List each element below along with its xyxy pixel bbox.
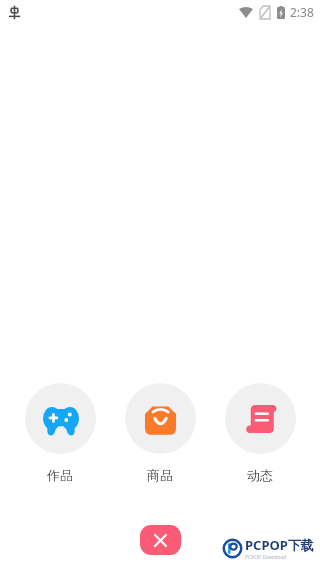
button[interactable]: 作品 (14, 381, 106, 485)
staticText: 动态 (247, 467, 273, 483)
staticText: PCPOP下载 (245, 536, 314, 554)
staticText: 商品 (147, 467, 173, 483)
button[interactable]: 关闭 (140, 525, 181, 555)
other: 商品 (144, 402, 177, 435)
other: 动态 (245, 403, 277, 435)
staticText: PCPOP Download (245, 554, 287, 561)
other: 作品 (43, 401, 79, 437)
button[interactable]: 商品 (114, 381, 206, 485)
staticText: 作品 (47, 467, 73, 483)
button[interactable]: 动态 (214, 381, 306, 485)
staticText: 2:38 (290, 4, 314, 20)
